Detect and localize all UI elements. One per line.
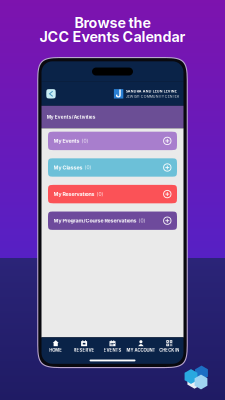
button[interactable]: HOME xyxy=(41,339,70,353)
staticText: (0) xyxy=(79,138,88,144)
staticText: JCC Events Calendar xyxy=(39,28,185,46)
staticText: MY ACCOUNT xyxy=(126,348,155,353)
button[interactable]: CHECK IN xyxy=(155,339,183,353)
staticText: JEWISH COMMUNITY CENTER xyxy=(126,94,179,99)
staticText: (0) xyxy=(82,164,91,170)
staticText: My Events/Activities xyxy=(47,114,96,120)
staticText: Browse the xyxy=(74,14,150,31)
button[interactable]: EVENTS xyxy=(98,339,127,353)
staticText: My Events xyxy=(53,138,79,144)
staticText: (0) xyxy=(136,218,145,224)
button[interactable]: My Program/Course Reservations xyxy=(48,211,177,230)
button[interactable]: My Classes xyxy=(48,158,177,177)
staticText: CHECK IN xyxy=(159,348,179,353)
staticText: J xyxy=(116,88,122,100)
button[interactable]: RESERVE xyxy=(70,339,98,353)
staticText: RESERVE xyxy=(74,348,95,353)
staticText: SANDRA AND LEON LEVINE xyxy=(126,89,177,93)
button[interactable]: MY ACCOUNT xyxy=(127,339,155,353)
button[interactable]: My Events xyxy=(48,132,177,150)
staticText: HOME xyxy=(49,348,62,353)
button[interactable]: Back xyxy=(46,89,56,98)
button[interactable]: My Reservations xyxy=(48,185,177,203)
staticText: My Program/Course Reservations xyxy=(53,218,136,224)
staticText: (0) xyxy=(94,191,103,197)
staticText: EVENTS xyxy=(103,348,121,353)
staticText: My Reservations xyxy=(53,191,94,197)
staticText: My Classes xyxy=(53,164,82,171)
